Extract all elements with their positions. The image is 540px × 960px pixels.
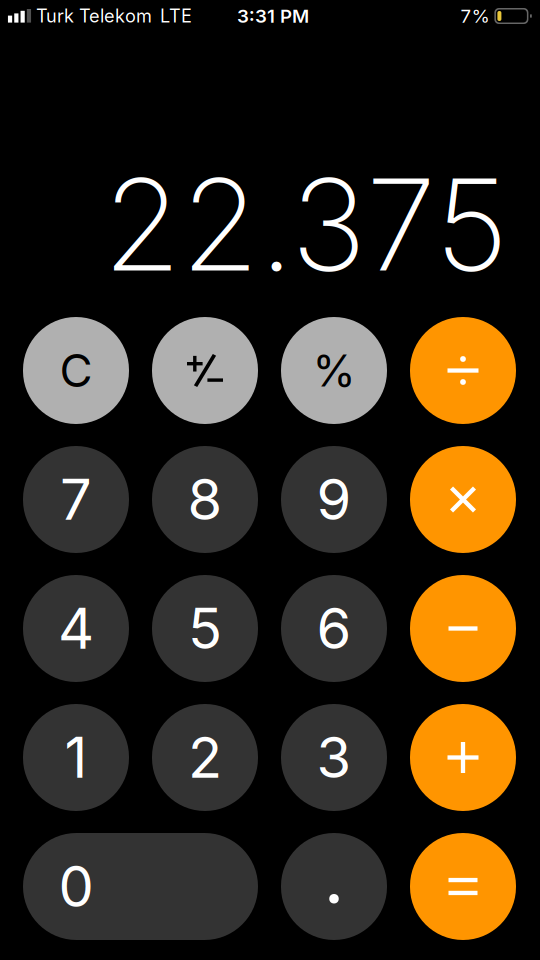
button[interactable]: Divide xyxy=(410,317,516,424)
staticText: LTE xyxy=(160,5,192,27)
staticText: 8 xyxy=(187,466,222,533)
button[interactable]: 1 xyxy=(23,704,129,811)
button[interactable]: 5 xyxy=(152,575,258,682)
button[interactable]: 2 xyxy=(152,704,258,811)
staticText: 2 xyxy=(188,724,222,791)
staticText: 22.375 xyxy=(103,148,508,301)
button[interactable]: 3 xyxy=(281,704,387,811)
staticText: 1 xyxy=(64,724,87,791)
button[interactable]: % xyxy=(281,317,387,424)
staticText: 6 xyxy=(316,595,351,662)
button[interactable]: Subtract xyxy=(410,575,516,682)
button[interactable]: Plus Minus xyxy=(152,317,258,424)
staticText: 0 xyxy=(58,853,93,920)
staticText: 3 xyxy=(316,724,351,791)
button[interactable]: Multiply xyxy=(410,446,516,553)
staticText: % xyxy=(312,344,355,397)
button[interactable]: 8 xyxy=(152,446,258,553)
button[interactable]: 0 xyxy=(23,833,258,940)
button[interactable]: Equals xyxy=(410,833,516,940)
staticText: 5 xyxy=(188,595,222,662)
button[interactable]: Decimal point xyxy=(281,833,387,940)
staticText: 7 xyxy=(60,466,92,533)
staticText: 7% xyxy=(460,5,489,27)
staticText: 9 xyxy=(316,466,351,533)
staticText: C xyxy=(59,343,92,398)
button[interactable]: C xyxy=(23,317,129,424)
button[interactable]: 4 xyxy=(23,575,129,682)
button[interactable]: 7 xyxy=(23,446,129,553)
button[interactable]: 9 xyxy=(281,446,387,553)
staticText: Turk Telekom xyxy=(36,5,152,27)
button[interactable]: Add xyxy=(410,704,516,811)
button[interactable]: 6 xyxy=(281,575,387,682)
staticText: 3:31 PM xyxy=(237,5,309,27)
staticText: 4 xyxy=(58,595,94,662)
